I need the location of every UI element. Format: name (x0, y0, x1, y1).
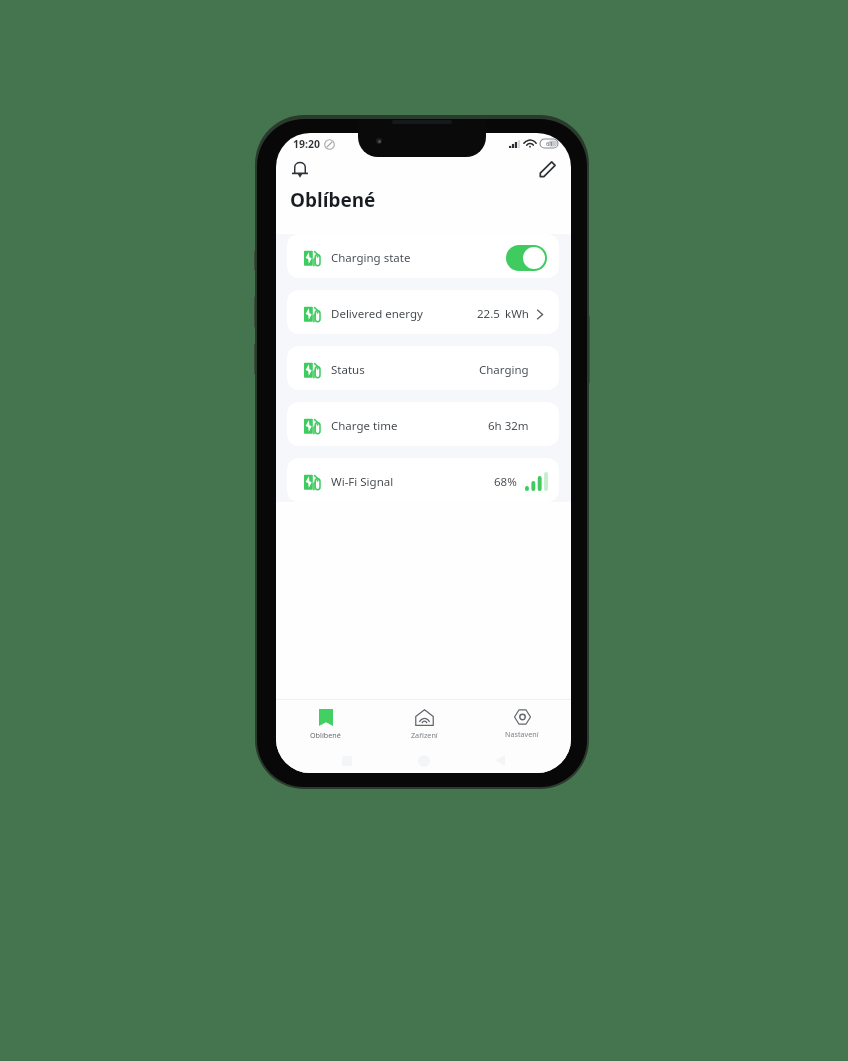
staticText: Charge time (331, 418, 398, 434)
button[interactable]: Wi-Fi Signal (287, 458, 559, 502)
button[interactable]: Zařízení (375, 700, 473, 748)
staticText: Charging state (331, 250, 411, 266)
staticText: 61 (546, 140, 553, 148)
button[interactable]: Notifications (286, 155, 314, 183)
button[interactable]: Charge time (287, 402, 559, 446)
staticText: Oblíbené (310, 730, 341, 740)
staticText: 22.5 (477, 306, 500, 322)
staticText: Wi-Fi Signal (331, 474, 394, 490)
staticText: Charging (479, 362, 529, 378)
button[interactable]: Status (287, 346, 559, 390)
button[interactable]: Edit (533, 155, 561, 183)
staticText: 19:20 (293, 137, 320, 151)
button[interactable]: Oblíbené (276, 700, 375, 748)
staticText: Status (331, 362, 365, 378)
staticText: 68% (494, 474, 517, 490)
staticText: Zařízení (411, 730, 438, 740)
button[interactable]: Delivered energy (287, 290, 559, 334)
staticText: Delivered energy (331, 306, 423, 322)
staticText: kWh (505, 306, 529, 322)
button[interactable]: Nastavení (473, 700, 571, 748)
staticText: Oblíbené (290, 187, 376, 213)
button[interactable]: Charging state toggle (506, 245, 547, 271)
staticText: 6h 32m (488, 418, 529, 434)
staticText: Nastavení (505, 729, 539, 739)
button[interactable]: Charging state (287, 234, 559, 278)
